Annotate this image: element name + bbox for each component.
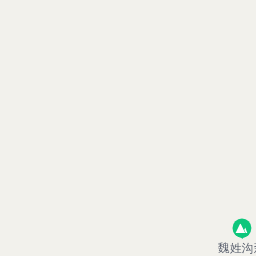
button[interactable]: 魏姓沟 scenic area marker <box>230 216 256 242</box>
button[interactable]: 魏姓沟森林 <box>218 241 256 256</box>
